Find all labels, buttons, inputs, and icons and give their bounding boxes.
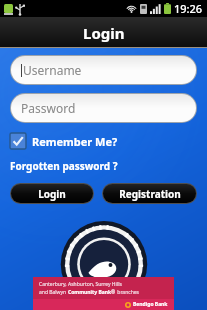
staticText: branches bbox=[116, 289, 139, 296]
button[interactable]: Forgotten password ? bbox=[10, 158, 118, 174]
staticText: Community Bank® bbox=[68, 289, 116, 296]
button[interactable]: Registration bbox=[103, 184, 196, 203]
staticText: Login bbox=[83, 23, 125, 43]
staticText: Password bbox=[21, 100, 76, 116]
button[interactable]: Login bbox=[11, 184, 93, 203]
button[interactable]: Password bbox=[11, 94, 196, 122]
staticText: Bendigo Bank bbox=[133, 301, 168, 308]
staticText: 19:26 bbox=[174, 1, 203, 16]
staticText: Registration bbox=[119, 187, 181, 201]
staticText: and Balwyn bbox=[39, 289, 68, 296]
staticText: Remember Me? bbox=[32, 134, 118, 149]
staticText: Login bbox=[38, 187, 66, 201]
staticText: Forgotten password ? bbox=[10, 159, 118, 173]
staticText: Username bbox=[23, 62, 82, 78]
button[interactable]: Canterbury, Ashburton, Surrey Hills bbox=[33, 277, 174, 310]
button[interactable]: Username bbox=[11, 56, 196, 84]
button[interactable]: Remember Me? bbox=[10, 132, 118, 150]
staticText: Canterbury, Ashburton, Surrey Hills bbox=[39, 281, 122, 288]
